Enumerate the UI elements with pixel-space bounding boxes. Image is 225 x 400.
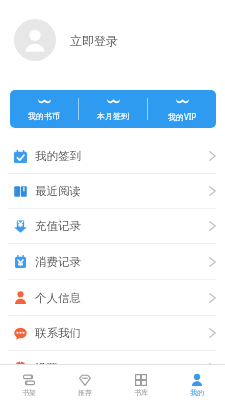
- button[interactable]: 充值记录: [0, 209, 225, 244]
- button[interactable]: 我的VIP: [148, 90, 216, 128]
- staticText: 本月签到: [97, 111, 129, 121]
- staticText: 消费记录: [35, 255, 81, 269]
- staticText: 立即登录: [70, 33, 118, 48]
- button[interactable]: 联系我们: [0, 316, 225, 351]
- staticText: 我的VIP: [168, 111, 197, 122]
- staticText: 推荐: [78, 388, 92, 397]
- button[interactable]: 个人信息: [0, 280, 225, 316]
- staticText: 我的签到: [35, 149, 81, 163]
- button[interactable]: 消费记录: [0, 244, 225, 280]
- staticText: 我的: [190, 388, 204, 397]
- staticText: 最近阅读: [35, 184, 81, 198]
- staticText: 个人信息: [35, 291, 81, 305]
- button[interactable]: 推荐: [57, 365, 113, 400]
- button[interactable]: 我的: [169, 365, 225, 400]
- staticText: 书库: [134, 388, 148, 397]
- button[interactable]: 书库: [113, 365, 169, 400]
- staticText: 书架: [22, 388, 36, 397]
- button[interactable]: 我的签到: [0, 139, 225, 174]
- button[interactable]: 最近阅读: [0, 174, 225, 209]
- staticText: 联系我们: [35, 326, 81, 340]
- button[interactable]: 书架: [0, 365, 57, 400]
- staticText: 我的书币: [28, 111, 60, 121]
- button[interactable]: 设置: [0, 351, 225, 386]
- staticText: 设置: [35, 361, 58, 375]
- button[interactable]: 立即登录: [0, 0, 225, 80]
- staticText: 充值记录: [35, 219, 81, 233]
- button[interactable]: 我的书币: [10, 90, 78, 128]
- button[interactable]: 本月签到: [79, 90, 147, 128]
